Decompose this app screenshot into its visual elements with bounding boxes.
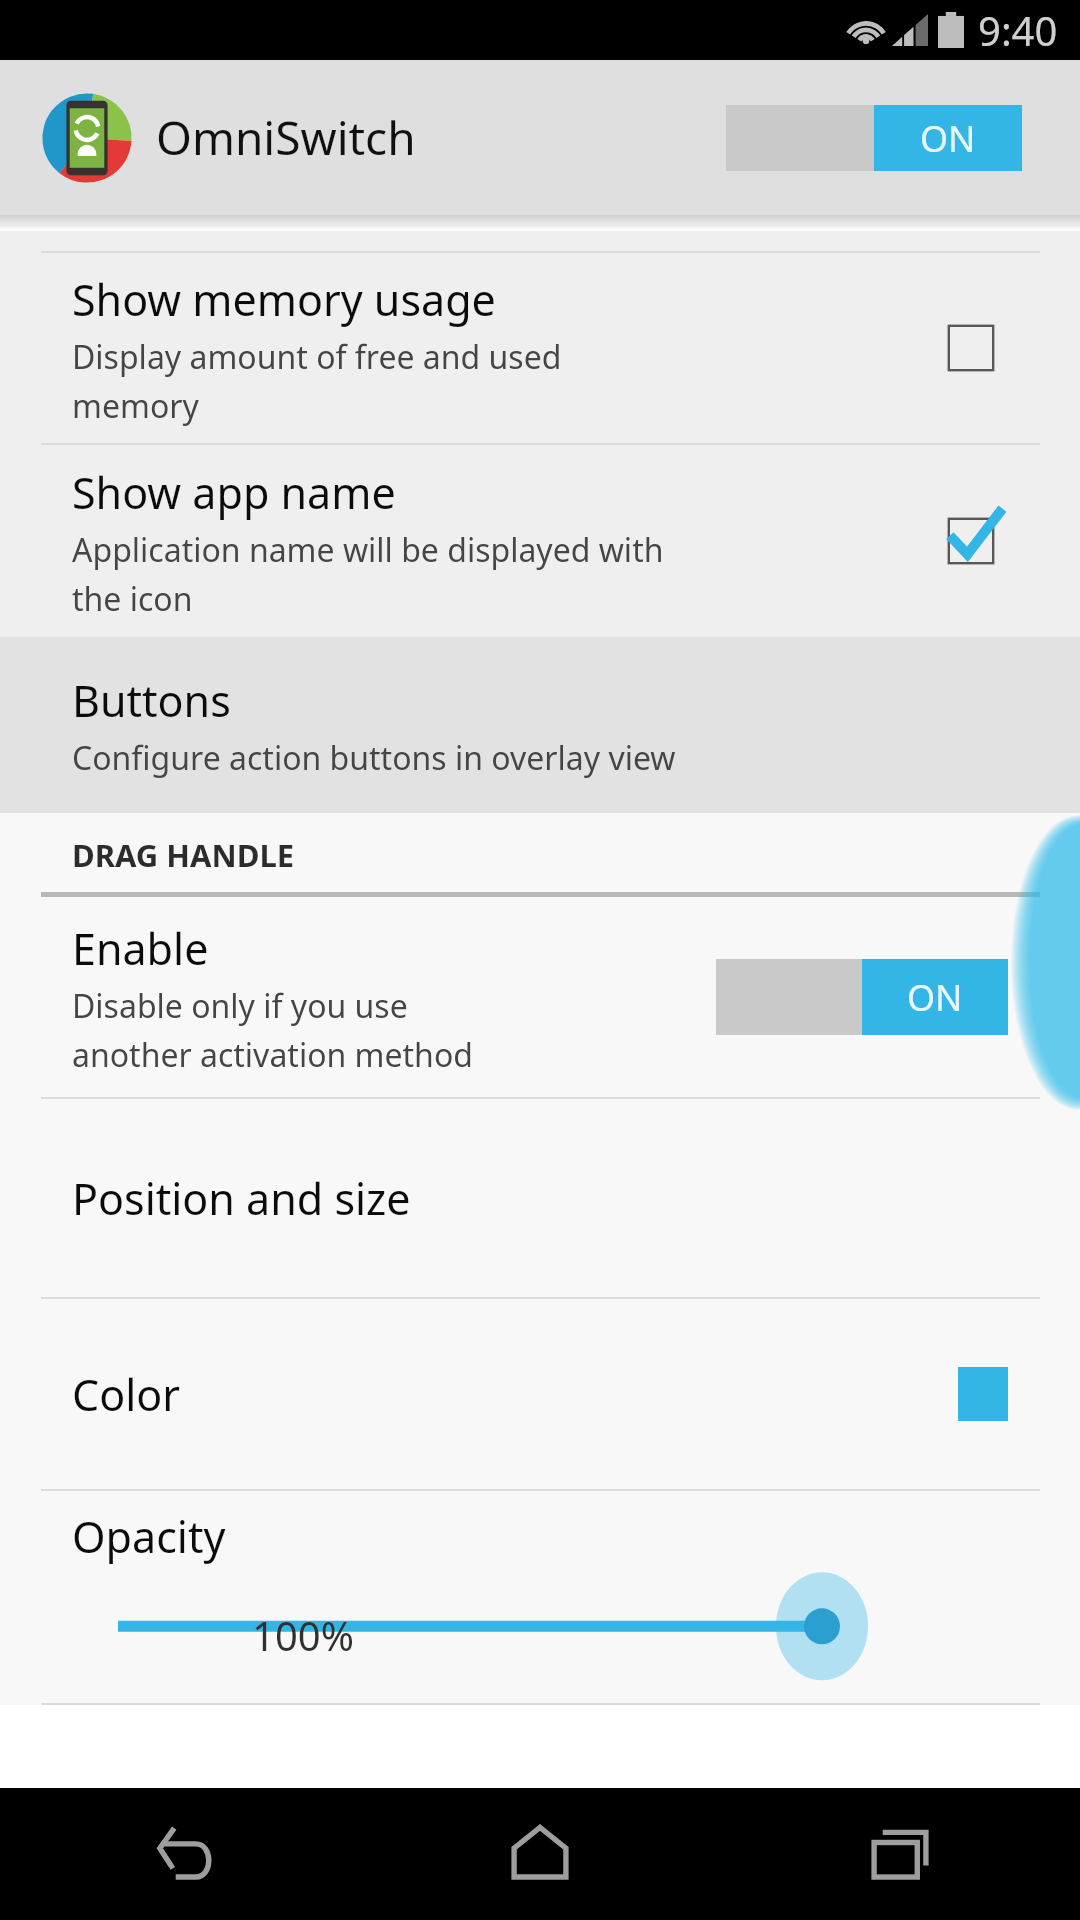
staticText: DRAG HANDLE [72,834,295,876]
staticText: Application name will be displayed with … [72,528,664,620]
button[interactable]: Color [0,1299,1080,1489]
button[interactable]: Checkbox, checked [934,504,1008,578]
staticText: OmniSwitch [156,106,416,169]
staticText: 9:40 [978,3,1058,57]
button[interactable]: Buttons [0,637,1080,813]
staticText: Show app name [72,463,396,522]
button[interactable]: Back [0,1788,360,1920]
staticText: Buttons [72,671,231,730]
button[interactable]: Show memory usage [0,253,1080,443]
button[interactable]: Toggle, on [716,959,1008,1035]
button[interactable]: Show app name [0,445,1080,637]
button[interactable]: Home [360,1788,720,1920]
staticText: Opacity [72,1507,226,1566]
button[interactable]: Opacity [0,1491,1080,1705]
staticText: Show memory usage [72,270,496,329]
staticText: 100% [252,1608,354,1662]
button[interactable]: Position and size [0,1099,1080,1297]
staticText: Color [72,1365,181,1424]
staticText: Enable [72,919,209,978]
staticText: Display amount of free and used memory [72,335,562,427]
staticText: Position and size [72,1169,411,1228]
staticText: ON [920,114,976,163]
staticText: Disable only if you use another activati… [72,984,473,1076]
button[interactable]: Enable [0,897,1080,1097]
staticText: Configure action buttons in overlay view [72,736,676,780]
button[interactable]: Toggle, on [726,105,1022,171]
staticText: ON [907,973,963,1022]
button[interactable]: Checkbox, unchecked [934,311,1008,385]
button[interactable]: Recent apps [720,1788,1080,1920]
